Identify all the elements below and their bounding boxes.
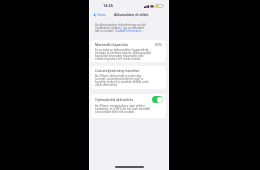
button[interactable]: Vissza — [92, 12, 107, 18]
staticText: Az iPhone akkumulátora jelenleg normál c… — [95, 74, 152, 87]
staticText: Ez az adat az akkumulátor kapacitását mu… — [95, 48, 152, 61]
staticText: Optimalizált akkutöltés — [95, 97, 134, 102]
button[interactable]: Maximális kapacitás — [91, 40, 166, 47]
button[interactable]: Optimalizált akkutöltés — [91, 94, 166, 103]
staticText: 84% — [155, 42, 162, 47]
staticText: Vissza — [97, 13, 106, 17]
button[interactable]: Optimalizált akkutöltés kapcsoló, bekapc… — [152, 96, 163, 103]
staticText: Maximális kapacitás — [95, 42, 129, 47]
button[interactable]: Csúcsteljesítmény kezelése — [91, 66, 166, 73]
staticText: Csúcsteljesítmény kezelése — [95, 68, 140, 73]
staticText: Az akkumulátor teljesítménye az idő múlá… — [95, 23, 149, 33]
staticText: Akkumulátor és töltés — [114, 13, 149, 17]
staticText: 14:26 — [103, 3, 113, 8]
staticText: Az iPhone megtanulja a napi töltési szok… — [95, 104, 152, 114]
